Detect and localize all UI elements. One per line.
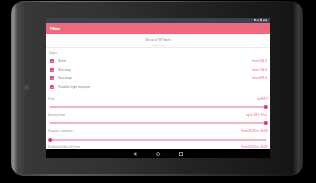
staticText: Reset filters: [152, 44, 165, 47]
staticText: Journey time: [48, 113, 66, 117]
staticText: Possible night stopover: [58, 85, 91, 89]
staticText: Two stops: [58, 76, 72, 80]
button[interactable]: Possible night stopover: [46, 82, 270, 91]
staticText: from 855 $: [252, 76, 267, 80]
staticText: Filters: [50, 26, 61, 31]
button[interactable]: Direct: [46, 56, 270, 65]
button[interactable]: Recent apps: [173, 149, 189, 158]
staticText: 356 out of 397 hotels: [145, 38, 171, 42]
staticText: Stops: [49, 51, 57, 55]
staticText: to 855 $: [257, 97, 268, 101]
staticText: from 546 $: [252, 59, 267, 63]
staticText: Price: [48, 97, 55, 101]
button[interactable]: Price: [46, 104, 270, 110]
button[interactable]: Reset filters: [46, 42, 270, 48]
button[interactable]: Journey time: [46, 120, 270, 126]
staticText: Stopover duration: [48, 129, 73, 133]
button[interactable]: Home: [150, 149, 166, 158]
button[interactable]: Back: [127, 149, 143, 158]
staticText: from 00:00 to 24:00: [241, 145, 268, 149]
button[interactable]: Stopover duration: [46, 137, 270, 143]
staticText: One stop: [58, 68, 71, 72]
button[interactable]: One stop: [46, 65, 270, 74]
staticText: up to 28 h 15 m: [246, 113, 268, 117]
staticText: Direct: [58, 59, 67, 63]
staticText: from 00:30 to 24:00: [241, 129, 268, 133]
button[interactable]: 356 out of 397 hotels: [46, 37, 270, 43]
staticText: Outbound take-off time: [48, 145, 81, 149]
staticText: from 124 $: [252, 68, 267, 72]
button[interactable]: Two stops: [46, 73, 270, 82]
